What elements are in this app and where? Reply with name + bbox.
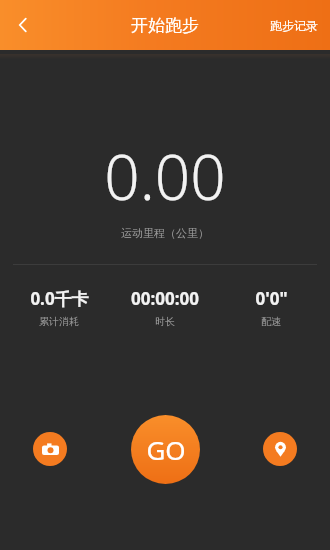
staticText: 运动里程（公里） — [121, 226, 209, 240]
button[interactable]: Camera — [33, 432, 67, 466]
staticText: 00:00:00 — [131, 287, 199, 310]
button[interactable]: GO — [131, 415, 200, 484]
staticText: 0'0" — [255, 287, 288, 310]
button[interactable]: Back — [0, 2, 46, 48]
button[interactable]: 00:00:00 — [112, 287, 218, 328]
staticText: 时长 — [155, 315, 175, 328]
staticText: GO — [146, 432, 186, 467]
staticText: 开始跑步 — [131, 15, 199, 36]
button[interactable]: 0.0千卡 — [6, 287, 112, 328]
staticText: 跑步记录 — [270, 18, 318, 33]
staticText: 累计消耗 — [39, 315, 79, 328]
button[interactable]: 跑步记录 — [258, 6, 330, 45]
button[interactable]: Location — [263, 432, 297, 466]
button[interactable]: 0'0" — [218, 287, 324, 328]
staticText: 配速 — [261, 315, 281, 328]
staticText: 0.0千卡 — [30, 287, 89, 310]
staticText: 0.00 — [104, 134, 226, 218]
